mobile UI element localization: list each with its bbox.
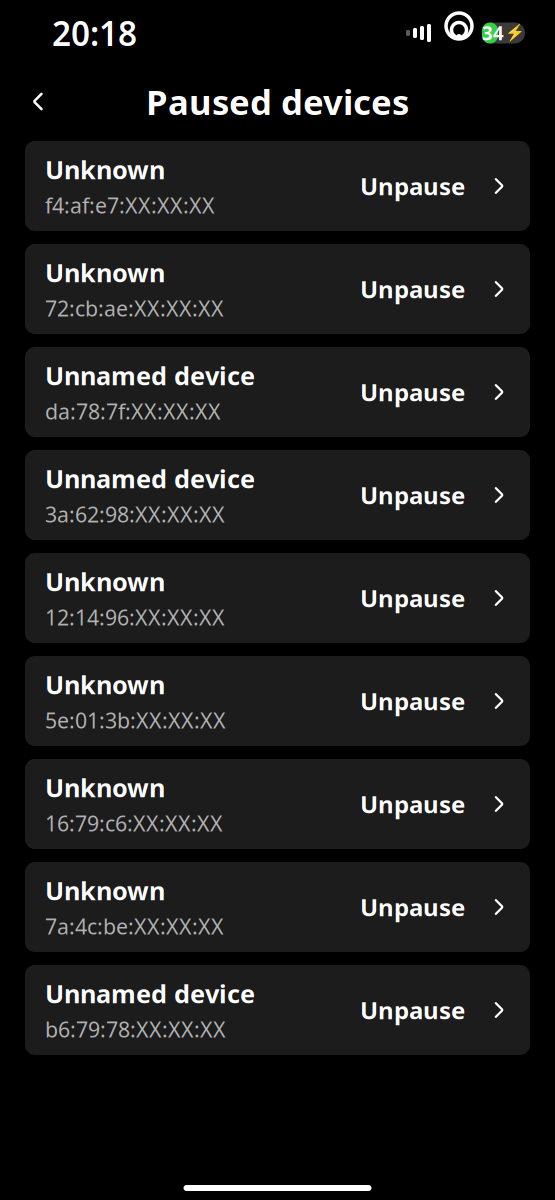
staticText: Unnamed device bbox=[45, 461, 255, 495]
staticText: Unknown bbox=[45, 770, 165, 804]
staticText: Unnamed device bbox=[45, 976, 255, 1010]
staticText: 16:79:c6:XX:XX:XX bbox=[45, 809, 223, 837]
staticText: Unknown bbox=[45, 564, 165, 598]
staticText: 72:cb:ae:XX:XX:XX bbox=[45, 294, 224, 322]
staticText: Unpause bbox=[360, 994, 465, 1026]
staticText: 3a:62:98:XX:XX:XX bbox=[45, 500, 225, 528]
staticText: 20:18 bbox=[52, 11, 137, 55]
staticText: Paused devices bbox=[146, 78, 409, 124]
staticText: Unpause bbox=[360, 788, 465, 820]
staticText: Unknown bbox=[45, 152, 165, 186]
button[interactable]: Unknown bbox=[25, 553, 530, 643]
staticText: da:78:7f:XX:XX:XX bbox=[45, 397, 221, 425]
staticText: Unpause bbox=[360, 891, 465, 923]
staticText: Unpause bbox=[360, 685, 465, 717]
staticText: b6:79:78:XX:XX:XX bbox=[45, 1015, 226, 1043]
staticText: ⚡ bbox=[505, 24, 525, 42]
button[interactable]: Unknown bbox=[25, 141, 530, 231]
button[interactable]: Unnamed device bbox=[25, 965, 530, 1055]
staticText: Unpause bbox=[360, 273, 465, 305]
staticText: Unpause bbox=[360, 376, 465, 408]
staticText: Unnamed device bbox=[45, 358, 255, 392]
staticText: f4:af:e7:XX:XX:XX bbox=[45, 191, 215, 219]
button[interactable]: Unknown bbox=[25, 759, 530, 849]
staticText: Unknown bbox=[45, 873, 165, 907]
staticText: Unknown bbox=[45, 667, 165, 701]
staticText: Unpause bbox=[360, 170, 465, 202]
button[interactable]: Unknown bbox=[25, 656, 530, 746]
staticText: Unpause bbox=[360, 582, 465, 614]
button[interactable]: Unknown bbox=[25, 244, 530, 334]
staticText: Unknown bbox=[45, 255, 165, 289]
staticText: 12:14:96:XX:XX:XX bbox=[45, 603, 225, 631]
staticText: 34 bbox=[482, 21, 504, 45]
button[interactable]: Unnamed device bbox=[25, 347, 530, 437]
staticText: Unpause bbox=[360, 479, 465, 511]
button[interactable]: Back bbox=[11, 74, 65, 128]
staticText: 7a:4c:be:XX:XX:XX bbox=[45, 912, 224, 940]
staticText: 5e:01:3b:XX:XX:XX bbox=[45, 706, 226, 734]
button[interactable]: Unnamed device bbox=[25, 450, 530, 540]
button[interactable]: Unknown bbox=[25, 862, 530, 952]
